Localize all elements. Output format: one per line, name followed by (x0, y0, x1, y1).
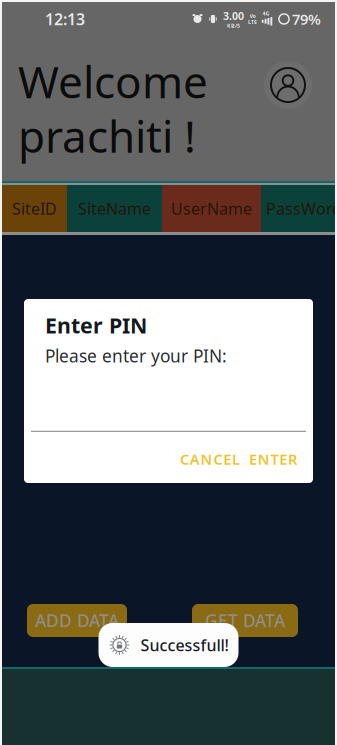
button[interactable]: GET DATA (192, 604, 298, 637)
staticText: 3.00 (223, 9, 244, 23)
staticText: Enter PIN (45, 311, 147, 339)
button[interactable]: SiteID (2, 185, 67, 232)
staticText: ENTER (249, 449, 297, 469)
staticText: 4G (262, 10, 269, 17)
button[interactable]: Account (264, 61, 312, 109)
staticText: Please enter your PIN: (45, 344, 227, 367)
button[interactable]: ADD DATA (27, 604, 127, 637)
staticText: prachiti ! (18, 106, 196, 165)
staticText: SiteName (78, 198, 151, 219)
button[interactable]: PassWord (261, 185, 335, 232)
staticText: CANCEL (180, 449, 240, 469)
staticText: UserName (171, 198, 252, 219)
staticText: SiteID (12, 198, 57, 219)
button[interactable]: SiteName (67, 185, 162, 232)
staticText: PassWord (266, 198, 337, 219)
staticText: LTE (248, 18, 257, 26)
staticText: Welcome (18, 52, 208, 110)
staticText: 79% (292, 9, 321, 29)
button[interactable]: ENTER (246, 444, 300, 474)
staticText: Successfull! (140, 634, 228, 656)
staticText: Vo (249, 12, 255, 19)
button[interactable]: UserName (162, 185, 261, 232)
button[interactable]: CANCEL (179, 444, 241, 474)
staticText: 12:13 (45, 8, 85, 30)
staticText: KB/S (227, 22, 240, 29)
staticText: ADD DATA (35, 609, 119, 632)
staticText: GET DATA (205, 609, 285, 632)
